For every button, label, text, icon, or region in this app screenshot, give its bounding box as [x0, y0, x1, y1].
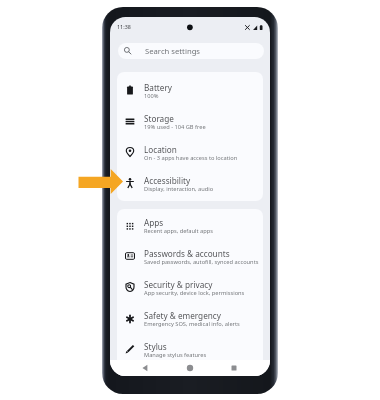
staticText: Storage — [144, 113, 174, 124]
staticText: Emergency SOS, medical info, alerts — [144, 320, 240, 328]
staticText: Display, interaction, audio — [144, 185, 214, 193]
staticText: Safety & emergency — [144, 310, 221, 321]
staticText: Passwords & accounts — [144, 248, 230, 259]
button[interactable]: Recents — [230, 364, 238, 372]
button[interactable]: Security & privacy — [117, 273, 263, 304]
button[interactable]: Home — [186, 364, 194, 372]
staticText: Manage stylus features — [144, 351, 207, 359]
staticText: On - 3 apps have access to location — [144, 154, 238, 162]
staticText: Recent apps, default apps — [144, 227, 213, 235]
button[interactable]: Safety & emergency — [117, 304, 263, 335]
staticText: 100% — [144, 92, 159, 100]
button[interactable]: Storage — [117, 107, 263, 138]
staticText: Security & privacy — [144, 279, 213, 290]
staticText: 19% used - 104 GB free — [144, 123, 206, 131]
button[interactable]: Apps — [117, 211, 263, 242]
staticText: 11:38 — [117, 23, 131, 30]
staticText: Battery — [144, 82, 173, 93]
button[interactable]: Location — [117, 138, 263, 169]
button[interactable]: Stylus — [117, 335, 263, 366]
staticText: Accessibility — [144, 175, 191, 186]
button[interactable]: Passwords & accounts — [117, 242, 263, 273]
staticText: Apps — [144, 217, 164, 228]
staticText: Search settings — [145, 46, 201, 56]
staticText: Stylus — [144, 341, 167, 352]
staticText: App security, device lock, permissions — [144, 289, 245, 297]
button[interactable]: Search settings — [118, 43, 264, 59]
button[interactable]: Back — [141, 364, 149, 372]
button[interactable]: Battery — [117, 76, 263, 107]
staticText: Location — [144, 144, 177, 155]
button[interactable]: Accessibility — [117, 169, 263, 200]
staticText: Saved passwords, autofill, synced accoun… — [144, 258, 259, 266]
